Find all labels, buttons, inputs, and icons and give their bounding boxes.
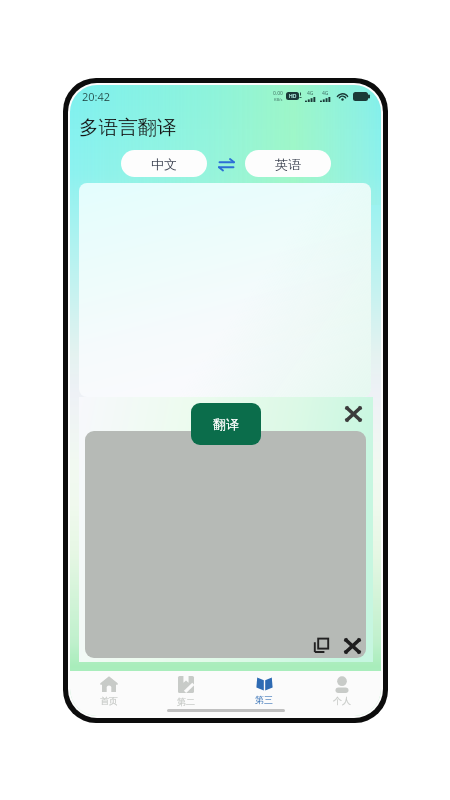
staticText: 0.00 [273,90,283,97]
staticText: KB/s [274,97,283,102]
button[interactable]: 翻译 [191,403,261,445]
button[interactable]: 英语 [245,150,331,177]
button[interactable]: Copy [312,636,331,655]
button[interactable]: Swap languages [214,152,238,176]
staticText: 英语 [275,156,301,172]
staticText: 第三 [255,694,273,705]
staticText: 第二 [177,696,195,707]
button[interactable] [79,183,371,397]
staticText: 多语言翻译 [79,115,177,140]
button[interactable]: Clear input [345,405,362,422]
staticText: HD [289,93,297,100]
staticText: 首页 [100,695,118,706]
button[interactable]: 第二 [147,671,225,711]
button[interactable]: 第三 [225,671,303,711]
staticText: 个人 [333,695,351,706]
button[interactable]: 个人 [303,671,381,711]
button[interactable]: 中文 [121,150,207,177]
button[interactable]: Clear result [343,636,362,655]
button[interactable]: 首页 [70,671,147,711]
staticText: 4G [322,90,329,97]
staticText: 翻译 [213,416,239,432]
staticText: 4G [307,90,314,97]
staticText: 中文 [151,156,177,172]
staticText: 20:42 [82,89,111,104]
